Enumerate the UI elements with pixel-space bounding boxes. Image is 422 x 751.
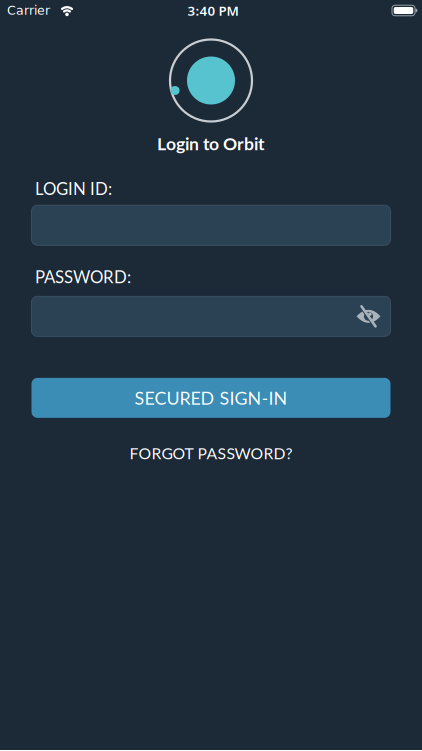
staticText: FORGOT PASSWORD? (129, 444, 292, 463)
staticText: PASSWORD: (35, 267, 131, 287)
button[interactable]: SECURED SIGN-IN (31, 378, 390, 418)
button[interactable]: FORGOT PASSWORD? (129, 444, 292, 463)
staticText: LOGIN ID: (35, 178, 112, 199)
button[interactable] (355, 306, 381, 326)
button[interactable] (31, 296, 390, 336)
staticText: Carrier (7, 3, 50, 18)
staticText: Login to Orbit (157, 133, 265, 154)
staticText: SECURED SIGN-IN (134, 387, 287, 408)
staticText: 3:40 PM (187, 2, 238, 19)
